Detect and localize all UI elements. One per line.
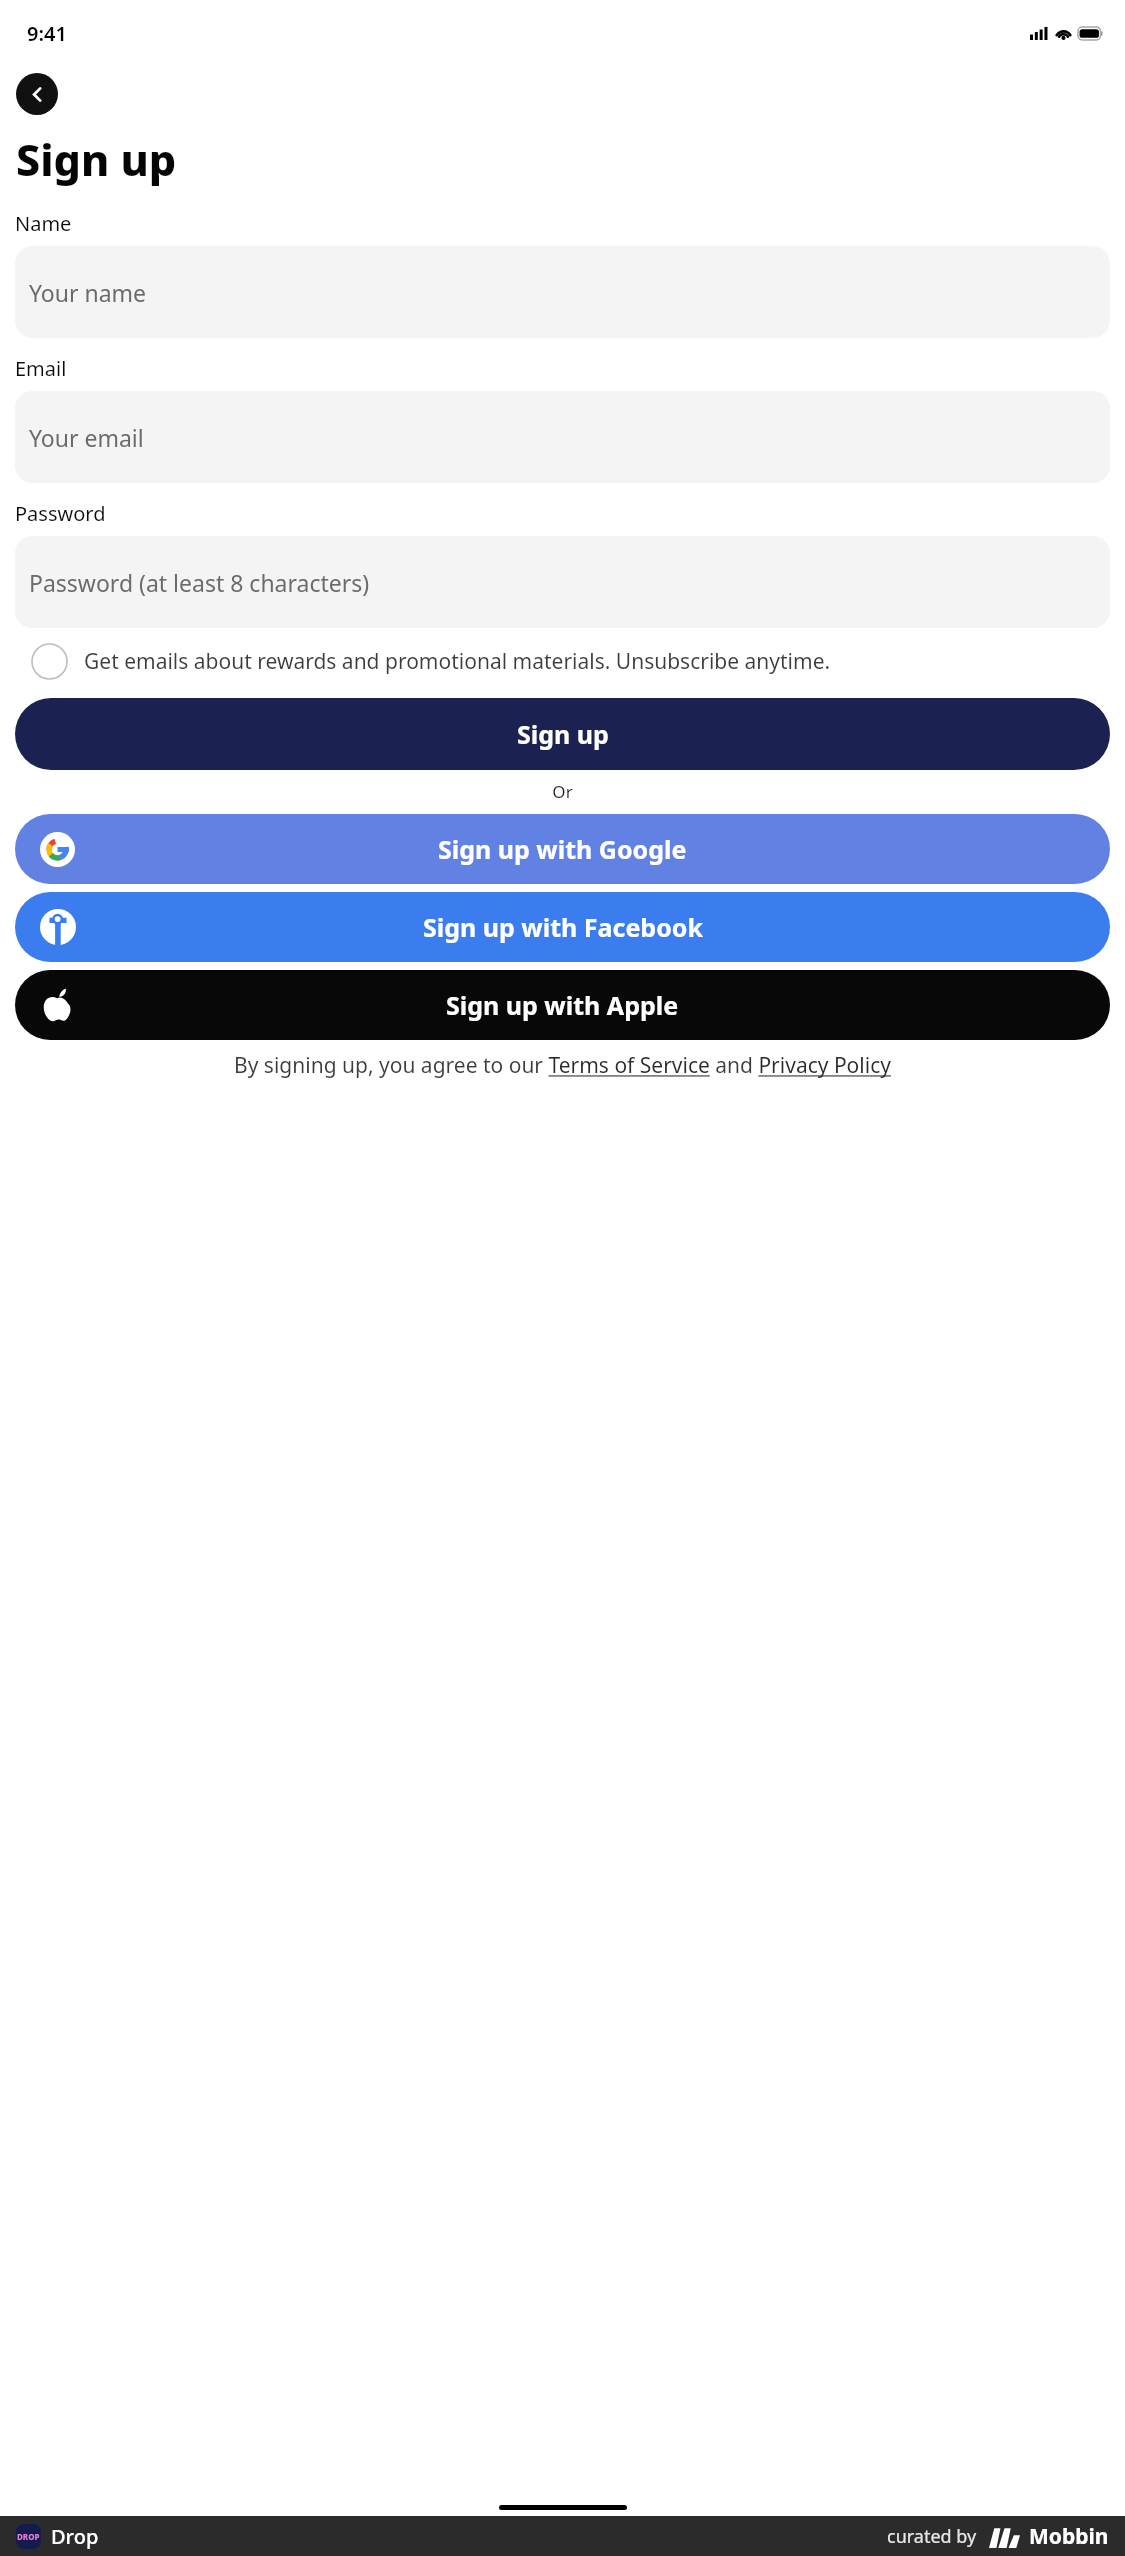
button[interactable]: Sign up with Google xyxy=(15,814,1110,884)
staticText: Email xyxy=(15,355,67,382)
staticText: Sign up with Apple xyxy=(446,988,679,1022)
staticText: 9:41 xyxy=(27,20,67,47)
staticText: Drop xyxy=(51,2523,99,2550)
button[interactable]: Get emails about rewards and promotional… xyxy=(15,639,1110,684)
button[interactable]: By signing up, you agree to our Terms of… xyxy=(26,1051,1099,1080)
button[interactable]: Your name xyxy=(15,246,1110,338)
button[interactable]: Sign up with Apple xyxy=(15,970,1110,1040)
button[interactable]: Back xyxy=(16,73,58,115)
button[interactable]: Password (at least 8 characters) xyxy=(15,536,1110,628)
staticText: DROP xyxy=(17,2531,40,2542)
staticText: Get emails about rewards and promotional… xyxy=(84,647,831,676)
staticText: Sign up with Facebook xyxy=(423,910,703,944)
staticText: Sign up xyxy=(16,130,177,189)
staticText: Sign up with Google xyxy=(438,832,687,866)
staticText: curated by xyxy=(887,2524,977,2549)
staticText: Mobbin xyxy=(1029,2522,1109,2551)
staticText: Your name xyxy=(29,277,147,308)
staticText: Password (at least 8 characters) xyxy=(29,567,370,598)
staticText: Name xyxy=(15,210,72,237)
staticText: Password xyxy=(15,500,106,527)
button[interactable]: Sign up xyxy=(15,698,1110,770)
staticText: By signing up, you agree to our Terms of… xyxy=(26,1051,1099,1080)
staticText: Or xyxy=(0,780,1125,803)
button[interactable]: Your email xyxy=(15,391,1110,483)
button[interactable]: Sign up with Facebook xyxy=(15,892,1110,962)
staticText: Your email xyxy=(29,422,144,453)
staticText: Sign up xyxy=(517,717,609,751)
